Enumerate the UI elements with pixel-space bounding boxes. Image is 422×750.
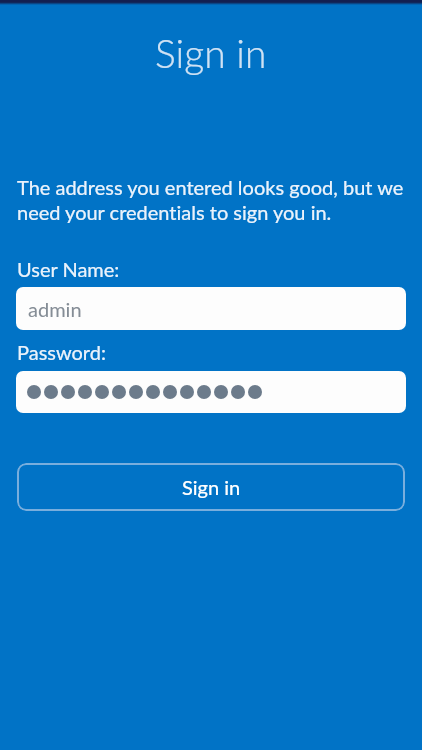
button[interactable] (16, 371, 406, 413)
staticText: Sign in (182, 475, 241, 499)
staticText: Password: (17, 340, 106, 364)
staticText: User Name: (17, 257, 120, 281)
staticText: Sign in (155, 30, 267, 77)
button[interactable]: admin (16, 287, 406, 330)
button[interactable]: Sign in (17, 463, 405, 511)
staticText: The address you entered looks good, but … (17, 175, 405, 225)
staticText: admin (28, 297, 82, 321)
